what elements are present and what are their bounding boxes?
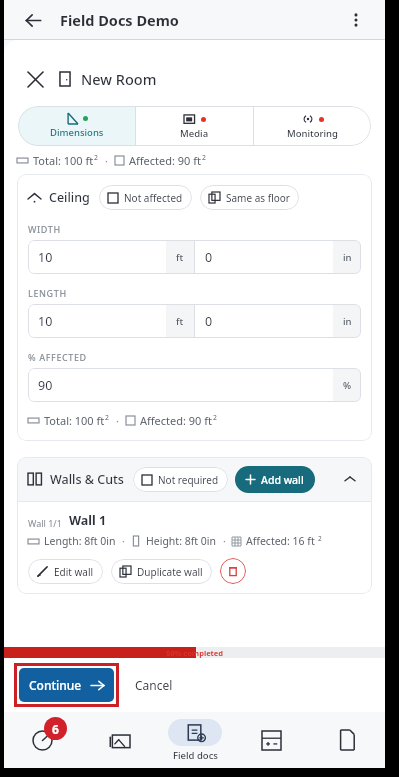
staticText: Not affected (124, 191, 183, 205)
staticText: Edit wall (54, 565, 94, 579)
button[interactable]: 10 (28, 304, 166, 338)
button[interactable]: Same as floor (200, 185, 299, 210)
staticText: 2 (213, 413, 217, 422)
staticText: Field Docs Demo (60, 10, 179, 30)
button[interactable]: Not affected (99, 185, 192, 210)
staticText: Affected: 90 ft (140, 413, 213, 428)
button[interactable]: Back (18, 5, 48, 35)
staticText: 0 (205, 313, 213, 330)
staticText: 6 (52, 721, 59, 737)
staticText: in (343, 315, 352, 328)
button[interactable]: Dimensions (18, 106, 135, 146)
button[interactable]: Field docs (157, 712, 233, 768)
staticText: Total: 100 ft (44, 413, 105, 428)
staticText: 90 (38, 377, 53, 394)
button[interactable]: Close (22, 66, 48, 92)
staticText: Wall 1 (69, 512, 107, 529)
staticText: · (223, 534, 226, 548)
staticText: LENGTH (28, 287, 67, 299)
staticText: 10 (38, 249, 53, 266)
staticText: 2 (105, 413, 109, 422)
staticText: Length: 8ft 0in (44, 534, 116, 548)
button[interactable]: Not required (133, 467, 228, 492)
staticText: Not required (158, 473, 219, 487)
staticText: Continue (29, 677, 82, 693)
button[interactable]: Monitoring (254, 106, 371, 146)
staticText: ft (176, 315, 184, 328)
staticText: Same as floor (226, 191, 290, 205)
staticText: Duplicate wall (137, 565, 203, 579)
button[interactable]: Cancel (129, 671, 179, 699)
staticText: Media (180, 127, 209, 140)
staticText: · (105, 153, 108, 168)
button[interactable]: Media (136, 106, 253, 146)
staticText: Monitoring (287, 127, 338, 140)
staticText: Wall 1/1 (28, 517, 62, 529)
button[interactable]: Collapse (339, 468, 361, 490)
staticText: New Room (81, 69, 157, 89)
staticText: WIDTH (28, 223, 61, 235)
staticText: Cancel (135, 677, 173, 693)
button[interactable]: Edit wall (28, 559, 103, 584)
button[interactable]: 0 (195, 304, 333, 338)
button[interactable]: Add wall (235, 466, 315, 493)
staticText: 2 (318, 534, 322, 543)
staticText: Dimensions (50, 126, 104, 139)
button[interactable]: Calculator (233, 712, 309, 768)
button[interactable]: Duplicate wall (111, 559, 212, 584)
button[interactable]: Documents (309, 712, 385, 768)
staticText: 2 (202, 153, 206, 162)
button[interactable]: 90 (28, 368, 333, 402)
staticText: % (343, 379, 352, 392)
staticText: 2 (94, 153, 98, 162)
button[interactable]: 0 (195, 240, 333, 274)
button[interactable]: More options (341, 5, 371, 35)
staticText: 10 (38, 313, 53, 330)
staticText: Height: 8ft 0in (146, 534, 217, 548)
staticText: 50% completed (166, 648, 224, 658)
staticText: Walls & Cuts (50, 471, 124, 488)
staticText: · (122, 534, 125, 548)
staticText: 0 (205, 249, 213, 266)
staticText: ft (176, 251, 184, 264)
staticText: in (343, 251, 352, 264)
staticText: Field docs (173, 749, 218, 762)
staticText: Add wall (261, 473, 304, 487)
button[interactable]: Continue (19, 668, 114, 702)
button[interactable]: Delete wall (220, 558, 246, 584)
button[interactable]: Dashboard (4, 712, 81, 768)
button[interactable]: 10 (28, 240, 166, 274)
staticText: Affected: 90 ft (129, 153, 202, 168)
staticText: · (116, 413, 119, 428)
staticText: Ceiling (49, 189, 90, 206)
button[interactable]: Photos (81, 712, 157, 768)
staticText: Total: 100 ft (33, 153, 94, 168)
staticText: Affected: 16 ft (246, 534, 318, 548)
staticText: % AFFECTED (28, 351, 87, 363)
